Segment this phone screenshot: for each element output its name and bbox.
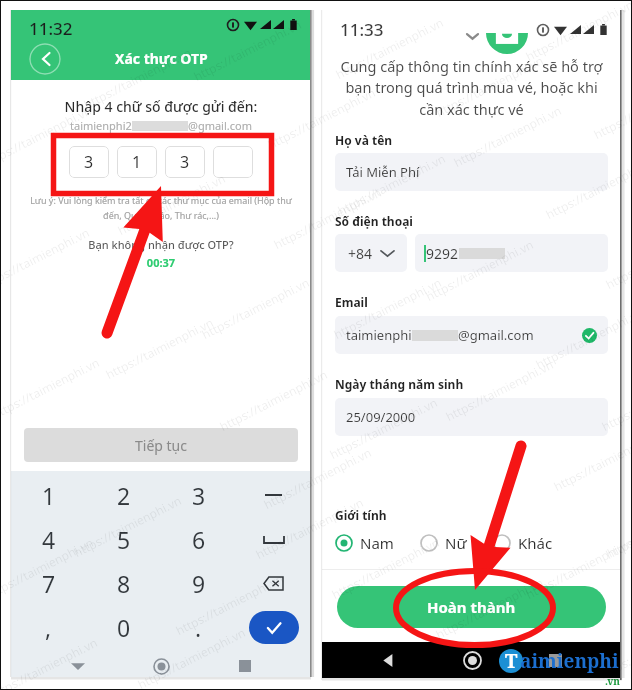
button[interactable]: Khác	[493, 533, 553, 553]
staticText: https://taimienphi.vn	[423, 236, 536, 304]
staticText: T	[505, 649, 518, 672]
staticText: 8	[117, 568, 131, 599]
staticText: 7	[42, 568, 56, 599]
staticText: https://taimienphi.vn	[523, 0, 632, 64]
staticText: https://taimienphi.vn	[115, 170, 228, 238]
staticText: 11:32	[29, 17, 73, 40]
button[interactable]: 2	[86, 473, 161, 517]
button[interactable]: 4	[11, 517, 86, 561]
staticText: https://taimienphi.vn	[0, 102, 94, 170]
button[interactable]: Home	[454, 642, 490, 678]
staticText: https://taimienphi.vn	[261, 444, 374, 512]
staticText: https://taimienphi.vn	[591, 74, 632, 142]
button[interactable]: Nữ	[420, 533, 467, 553]
button[interactable]: 3	[69, 146, 109, 178]
button[interactable]: 1	[11, 473, 86, 517]
staticText: 0	[117, 612, 131, 643]
staticText: https://taimienphi.vn	[551, 426, 632, 494]
button[interactable]: 3	[161, 473, 236, 517]
staticText: https://taimienphi.vn	[451, 102, 564, 170]
staticText: 4	[42, 524, 56, 555]
button[interactable]: Dash	[236, 473, 311, 517]
staticText: Số điện thoại	[335, 213, 413, 229]
staticText: 00:37	[11, 255, 311, 270]
button[interactable]: 25/09/2000	[346, 398, 597, 436]
button[interactable]: Tải Miễn Phí	[346, 153, 597, 191]
button[interactable]: .	[161, 605, 236, 649]
button[interactable]: 9292	[415, 234, 608, 272]
staticText: Giới tính	[335, 507, 387, 523]
button[interactable]: Recents	[228, 655, 262, 677]
staticText: 9292	[426, 244, 459, 263]
staticText: Tải Miễn Phí	[346, 163, 420, 181]
staticText: https://taimienphi.vn	[597, 614, 632, 682]
staticText: 1	[132, 151, 142, 173]
button[interactable]: Space	[236, 517, 311, 561]
button[interactable]: 1	[117, 146, 157, 178]
button[interactable]: Back	[370, 642, 406, 678]
button[interactable]: Done	[249, 611, 299, 644]
staticText: https://taimienphi.vn	[433, 574, 546, 642]
staticText: https://taimienphi.vn	[327, 394, 440, 462]
staticText: https://taimienphi.vn	[331, 274, 444, 342]
staticText: @gmail.com	[188, 118, 252, 133]
button[interactable]: Nam	[335, 533, 394, 553]
button[interactable]: Backspace	[236, 561, 311, 605]
staticText: https://taimienphi.vn	[335, 150, 448, 218]
staticText: Email	[335, 294, 368, 310]
button[interactable]: Tiếp tục	[24, 428, 298, 462]
button[interactable]: 7	[11, 561, 86, 605]
staticText: https://taimienphi.vn	[333, 14, 446, 82]
staticText: ,	[45, 612, 52, 643]
staticText: https://taimienphi.vn	[533, 304, 632, 372]
staticText: https://taimienphi.vn	[81, 44, 194, 112]
staticText: https://taimienphi.vn	[199, 274, 312, 342]
button[interactable]: Hoàn thành	[337, 586, 606, 628]
button[interactable]: 9	[161, 561, 236, 605]
staticText: taimienphi2	[70, 118, 132, 133]
staticText: 5	[117, 524, 131, 555]
staticText: https://taimienphi.vn	[173, 570, 286, 638]
button[interactable]: Home	[144, 655, 178, 677]
staticText: aimienphi	[520, 648, 619, 674]
staticText: Xác thực OTP	[115, 49, 208, 68]
button[interactable]: 0	[86, 605, 161, 649]
staticText: https://taimienphi.vn	[0, 634, 100, 690]
staticText: https://taimienphi.vn	[271, 184, 384, 252]
staticText: https://taimienphi.vn	[0, 534, 96, 602]
button[interactable]: Hide keyboard	[61, 655, 95, 677]
staticText: Ngày tháng năm sinh	[335, 376, 464, 392]
staticText: Nam	[360, 533, 394, 553]
staticText: @gmail.com	[458, 326, 534, 344]
staticText: https://taimienphi.vn	[71, 492, 184, 560]
staticText: Nữ	[445, 533, 467, 553]
button[interactable]: ,	[11, 605, 86, 649]
button[interactable]: 3	[165, 146, 205, 178]
staticText: 1	[42, 480, 56, 511]
staticText: 25/09/2000	[346, 408, 416, 426]
staticText: Nhập 4 chữ số được gửi đến:	[11, 97, 311, 116]
button[interactable]: Recents	[537, 642, 573, 678]
button[interactable]: Back	[29, 43, 61, 75]
staticText: 3	[192, 480, 206, 511]
button[interactable]: taimienphi	[335, 316, 608, 354]
staticText: +84	[348, 244, 373, 263]
staticText: https://taimienphi.vn	[523, 534, 632, 602]
staticText: Khác	[518, 533, 553, 553]
staticText: https://taimienphi.vn	[433, 52, 546, 120]
staticText: 9	[192, 568, 206, 599]
button[interactable]: 6	[161, 517, 236, 561]
staticText: 11:33	[340, 18, 384, 41]
button[interactable]: +84	[335, 234, 407, 272]
button[interactable]	[213, 146, 253, 178]
staticText: https://taimienphi.vn	[443, 356, 556, 424]
staticText: Tiếp tục	[135, 436, 187, 455]
button[interactable]: 5	[86, 517, 161, 561]
staticText: https://taimienphi.vn	[103, 314, 216, 382]
staticText: https://taimienphi.vn	[0, 354, 102, 422]
staticText: https://taimienphi.vn	[603, 224, 632, 292]
staticText: https://taimienphi.vn	[0, 224, 92, 292]
staticText: https://taimienphi.vn	[217, 366, 330, 434]
staticText: Cung cấp thông tin chính xác sẽ hỗ trợ b…	[328, 56, 615, 120]
button[interactable]: 8	[86, 561, 161, 605]
